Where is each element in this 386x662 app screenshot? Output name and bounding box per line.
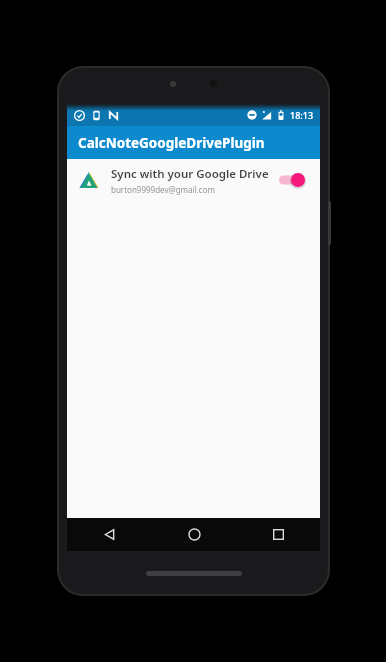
staticText: Sync with your Google Drive <box>111 166 269 182</box>
staticText: burton9999dev@gmail.com <box>111 184 215 195</box>
button[interactable]: Recents <box>236 518 320 551</box>
staticText: 18:13 <box>290 109 314 121</box>
staticText: CalcNoteGoogleDrivePlugin <box>78 134 265 152</box>
button[interactable]: Home <box>152 518 236 551</box>
button[interactable]: Toggle Google Drive sync <box>276 169 310 191</box>
button[interactable]: Sync with your Google Drive <box>67 159 320 201</box>
button[interactable]: Back <box>67 518 152 551</box>
